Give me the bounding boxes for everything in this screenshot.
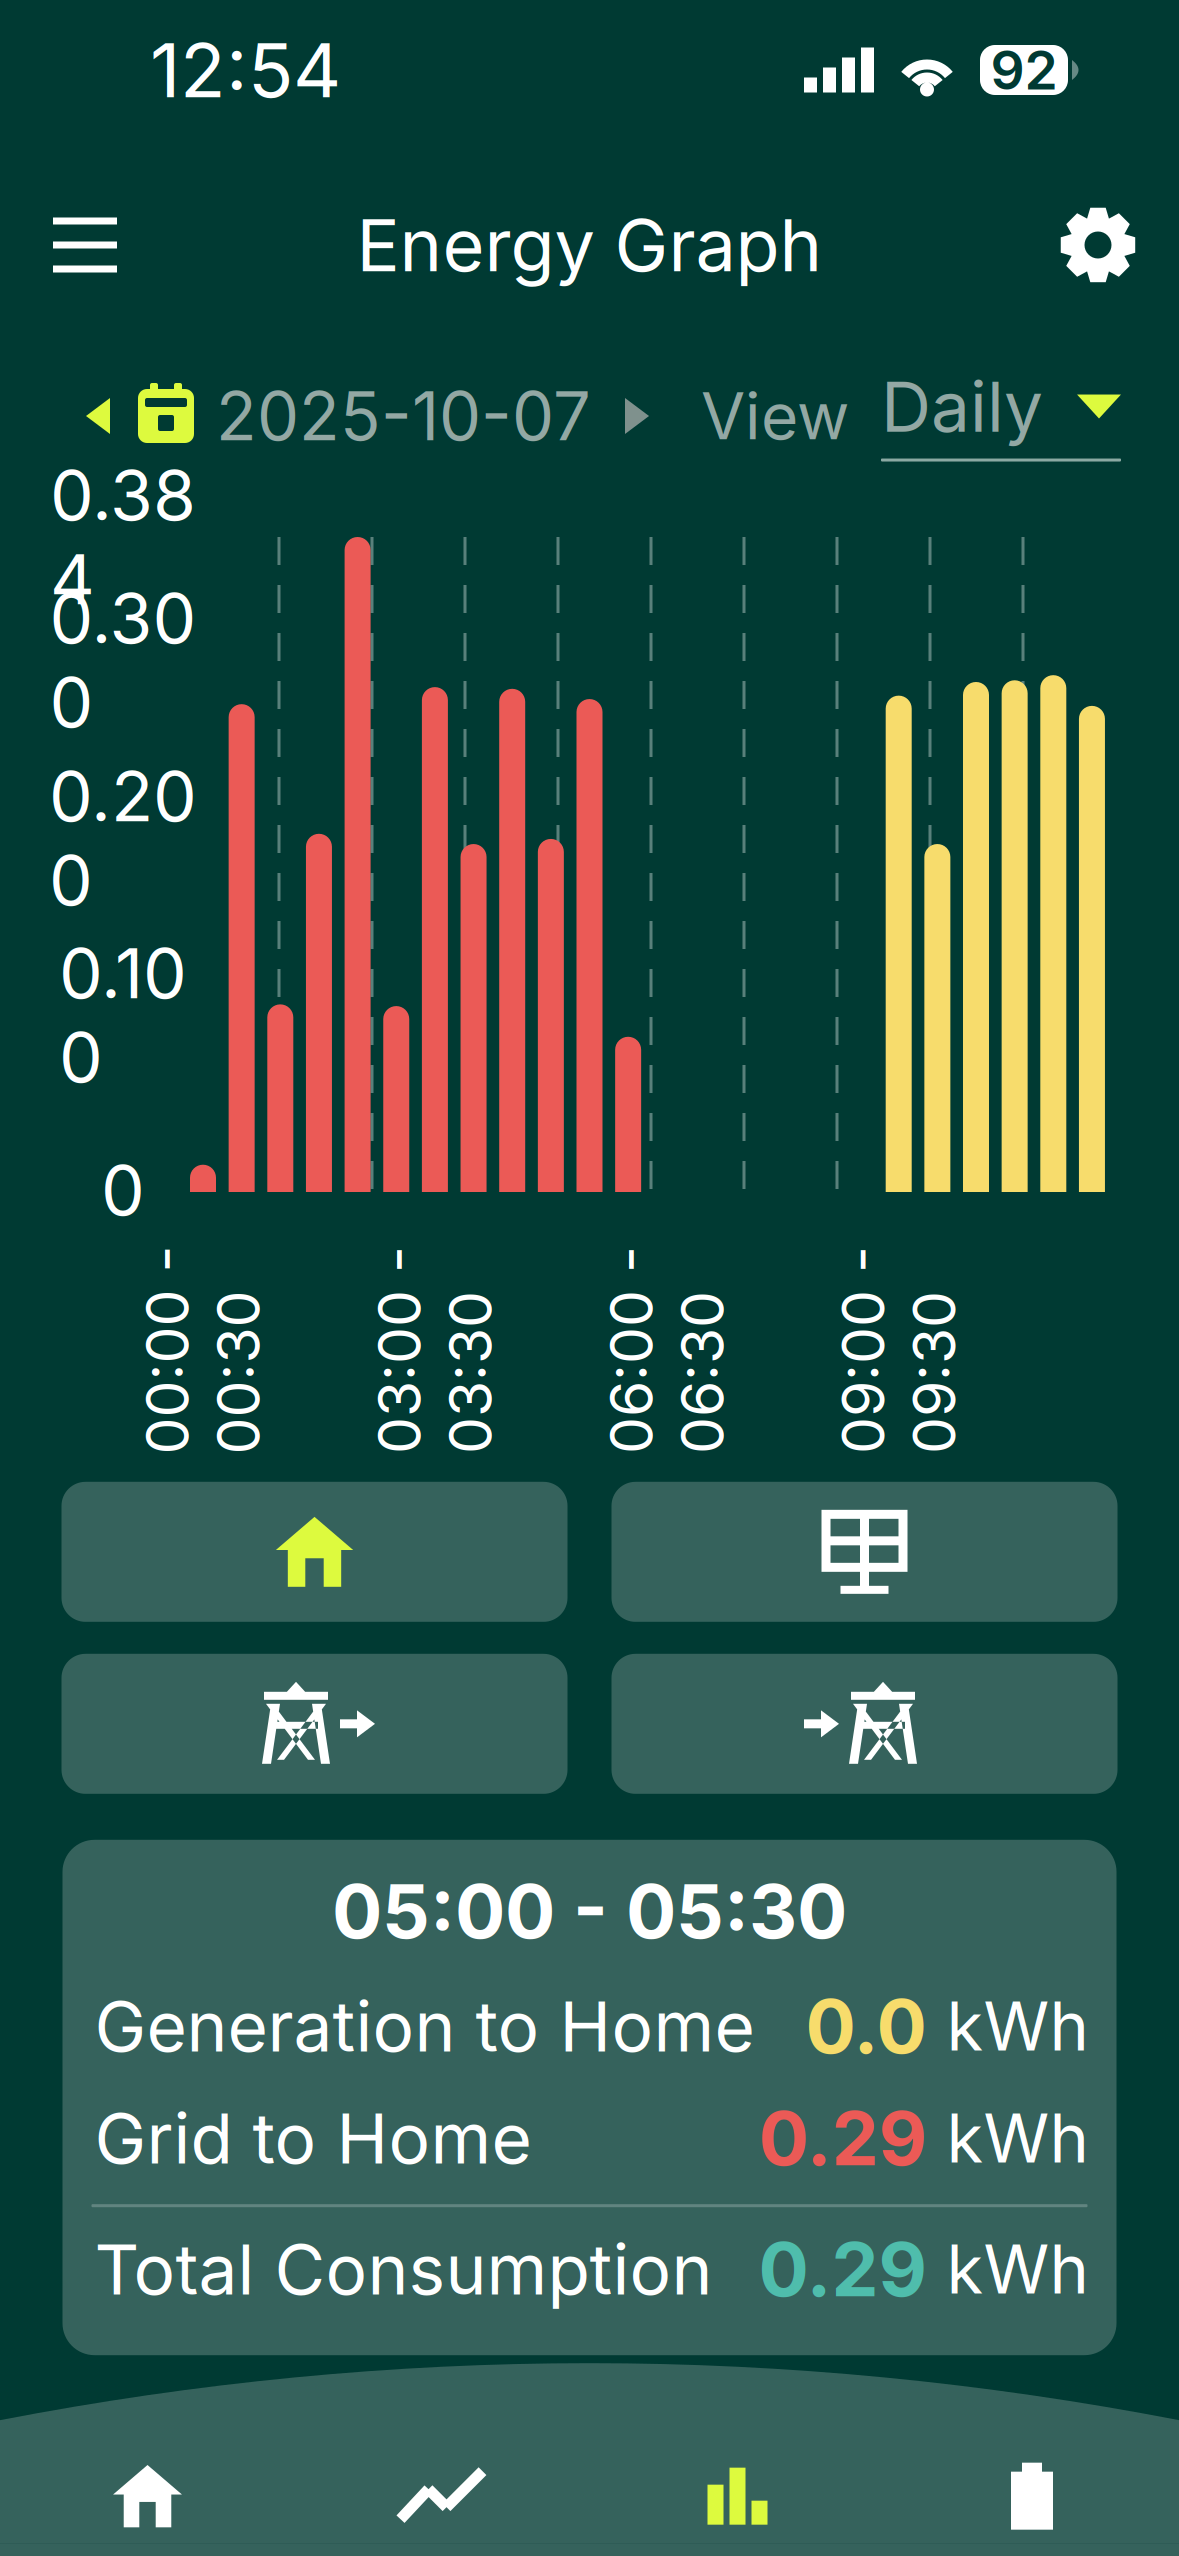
staticText: 0.0 — [805, 1981, 926, 2071]
staticText: 0.100 — [59, 931, 187, 1099]
staticText: kWh — [946, 2229, 1088, 2309]
staticText: 0.29 — [758, 2224, 926, 2314]
button[interactable]: Daily — [881, 361, 1121, 471]
button[interactable]: Next day — [591, 371, 683, 461]
staticText: Daily — [881, 365, 1043, 448]
button[interactable]: Menu — [30, 190, 140, 300]
staticText: kWh — [946, 2098, 1088, 2178]
staticText: 12:54 — [150, 25, 341, 115]
button[interactable]: Home — [0, 2451, 295, 2541]
button[interactable]: Energy graph — [590, 2451, 885, 2541]
staticText: 92 — [990, 38, 1057, 102]
button[interactable]: Previous day — [58, 371, 138, 461]
staticText: 06:00 - 06:30 — [563, 1279, 771, 1421]
button[interactable]: Trends — [295, 2451, 590, 2541]
staticText: Generation to Home — [94, 1984, 754, 2068]
staticText: Energy Graph — [356, 201, 822, 288]
staticText: Total Consumption — [94, 2227, 712, 2311]
staticText: 0 — [101, 1148, 145, 1232]
button[interactable]: 2025-10-07 — [138, 371, 591, 461]
staticText: 00:00 - 00:30 — [98, 1279, 307, 1421]
button[interactable]: Battery — [885, 2451, 1179, 2541]
staticText: View — [701, 377, 849, 455]
button[interactable]: Grid import — [611, 1654, 1117, 1794]
button[interactable]: Home — [61, 1482, 567, 1622]
staticText: 05:00 - 05:30 — [332, 1866, 847, 1956]
staticText: 03:00 - 03:30 — [331, 1279, 539, 1421]
staticText: 0.200 — [49, 754, 197, 922]
button[interactable]: Grid export — [61, 1654, 567, 1794]
staticText: 0.29 — [758, 2093, 926, 2183]
staticText: 2025-10-07 — [216, 376, 591, 456]
staticText: 0.384 — [50, 453, 196, 621]
staticText: Grid to Home — [94, 2096, 531, 2180]
staticText: kWh — [946, 1986, 1088, 2066]
button[interactable]: Solar — [611, 1482, 1117, 1622]
button[interactable]: Settings — [1043, 190, 1153, 300]
staticText: 09:00 - 09:30 — [795, 1279, 1003, 1421]
staticText: 0.300 — [49, 576, 196, 744]
